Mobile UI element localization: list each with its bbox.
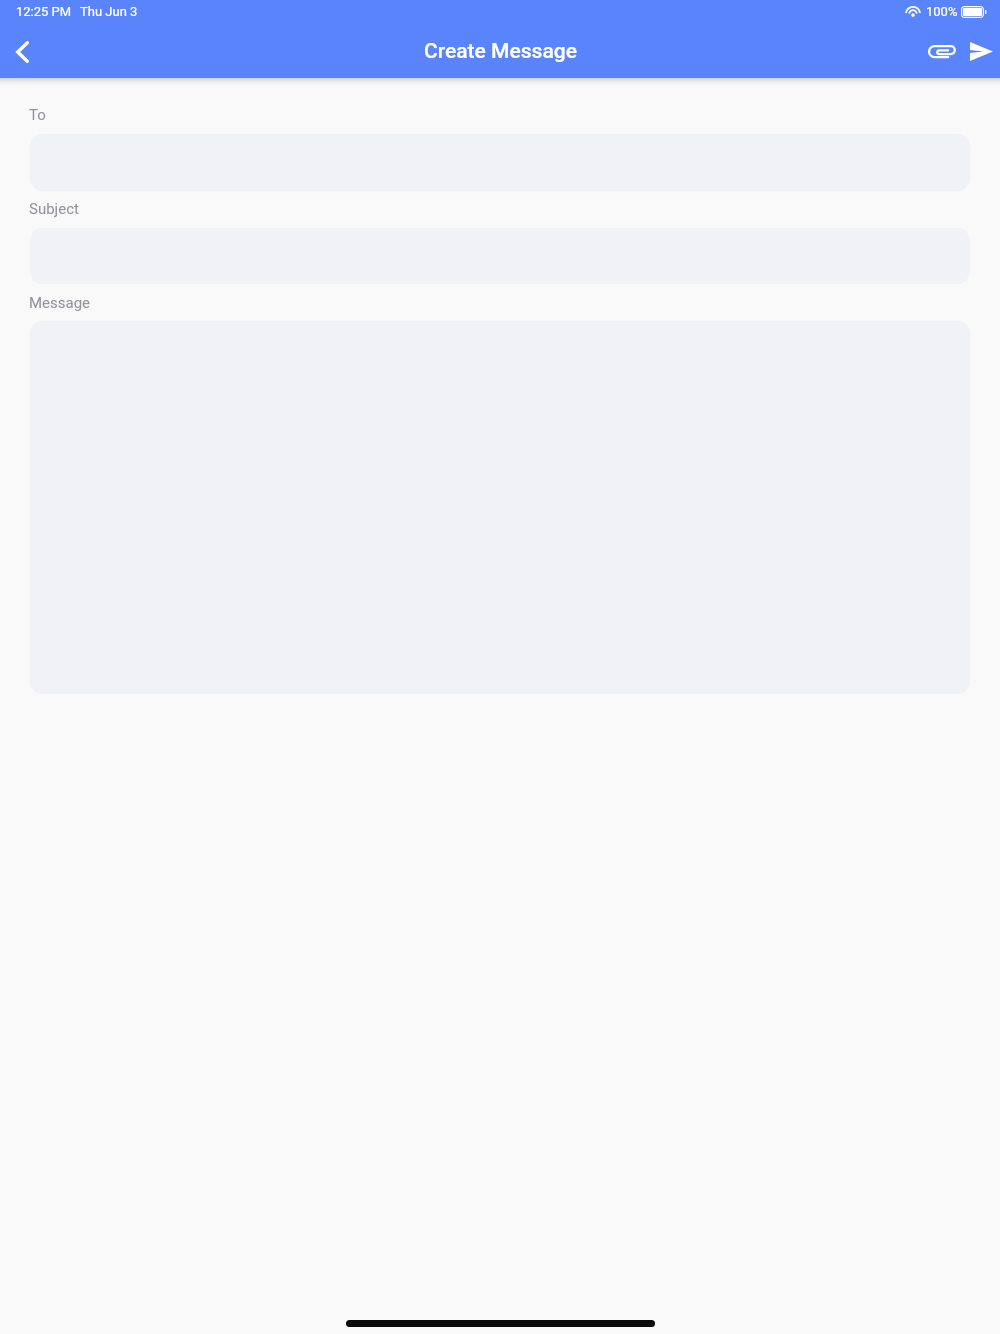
staticText: To xyxy=(29,106,46,124)
staticText: Thu Jun 3 xyxy=(80,4,138,19)
staticText: Message xyxy=(29,294,91,312)
button[interactable]: Send message xyxy=(962,26,1000,78)
button[interactable]: Attach file xyxy=(921,26,962,78)
staticText: 12:25 PM xyxy=(16,4,72,19)
staticText: Create Message xyxy=(424,39,577,64)
button[interactable]: Navigate back xyxy=(0,26,44,78)
staticText: Subject xyxy=(29,200,79,218)
staticText: 100% xyxy=(926,4,958,19)
